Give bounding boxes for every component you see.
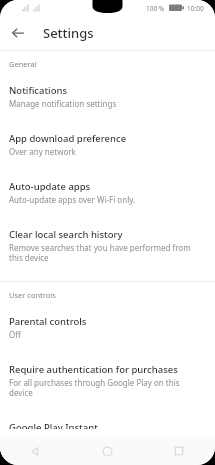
button[interactable]: App download preference	[0, 125, 215, 165]
staticText: Remove searches that you have performed …	[9, 242, 203, 263]
staticText: Off	[9, 329, 21, 340]
staticText: Clear local search history	[9, 228, 123, 241]
staticText: Parental controls	[9, 315, 87, 328]
staticText: Manage notification settings	[9, 98, 117, 109]
button[interactable]: Recent apps	[143, 437, 215, 465]
staticText: Require authentication for purchases	[9, 363, 178, 376]
staticText: Notifications	[9, 84, 68, 97]
button[interactable]: Notifications	[0, 77, 215, 117]
button[interactable]: Back	[4, 19, 32, 47]
staticText: Over any network	[9, 146, 76, 157]
button[interactable]: Auto-update apps	[0, 173, 215, 213]
button[interactable]: Home	[71, 437, 143, 465]
staticText: For all purchases through Google Play on…	[9, 377, 203, 398]
staticText: Settings	[43, 24, 94, 42]
button[interactable]: Require authentication for purchases	[0, 356, 215, 406]
button[interactable]: Google Play Instant	[0, 414, 215, 437]
button[interactable]: Back	[0, 437, 71, 465]
staticText: App download preference	[9, 132, 127, 145]
staticText: General	[9, 59, 37, 69]
staticText: 10:00	[187, 4, 204, 13]
button[interactable]: Clear local search history	[0, 221, 215, 271]
staticText: User controls	[9, 290, 56, 300]
button[interactable]: Parental controls	[0, 308, 215, 348]
staticText: 100 %	[146, 4, 165, 13]
staticText: Auto-update apps over Wi-Fi only.	[9, 194, 136, 205]
staticText: Auto-update apps	[9, 180, 91, 193]
staticText: Google Play Instant	[9, 421, 98, 429]
